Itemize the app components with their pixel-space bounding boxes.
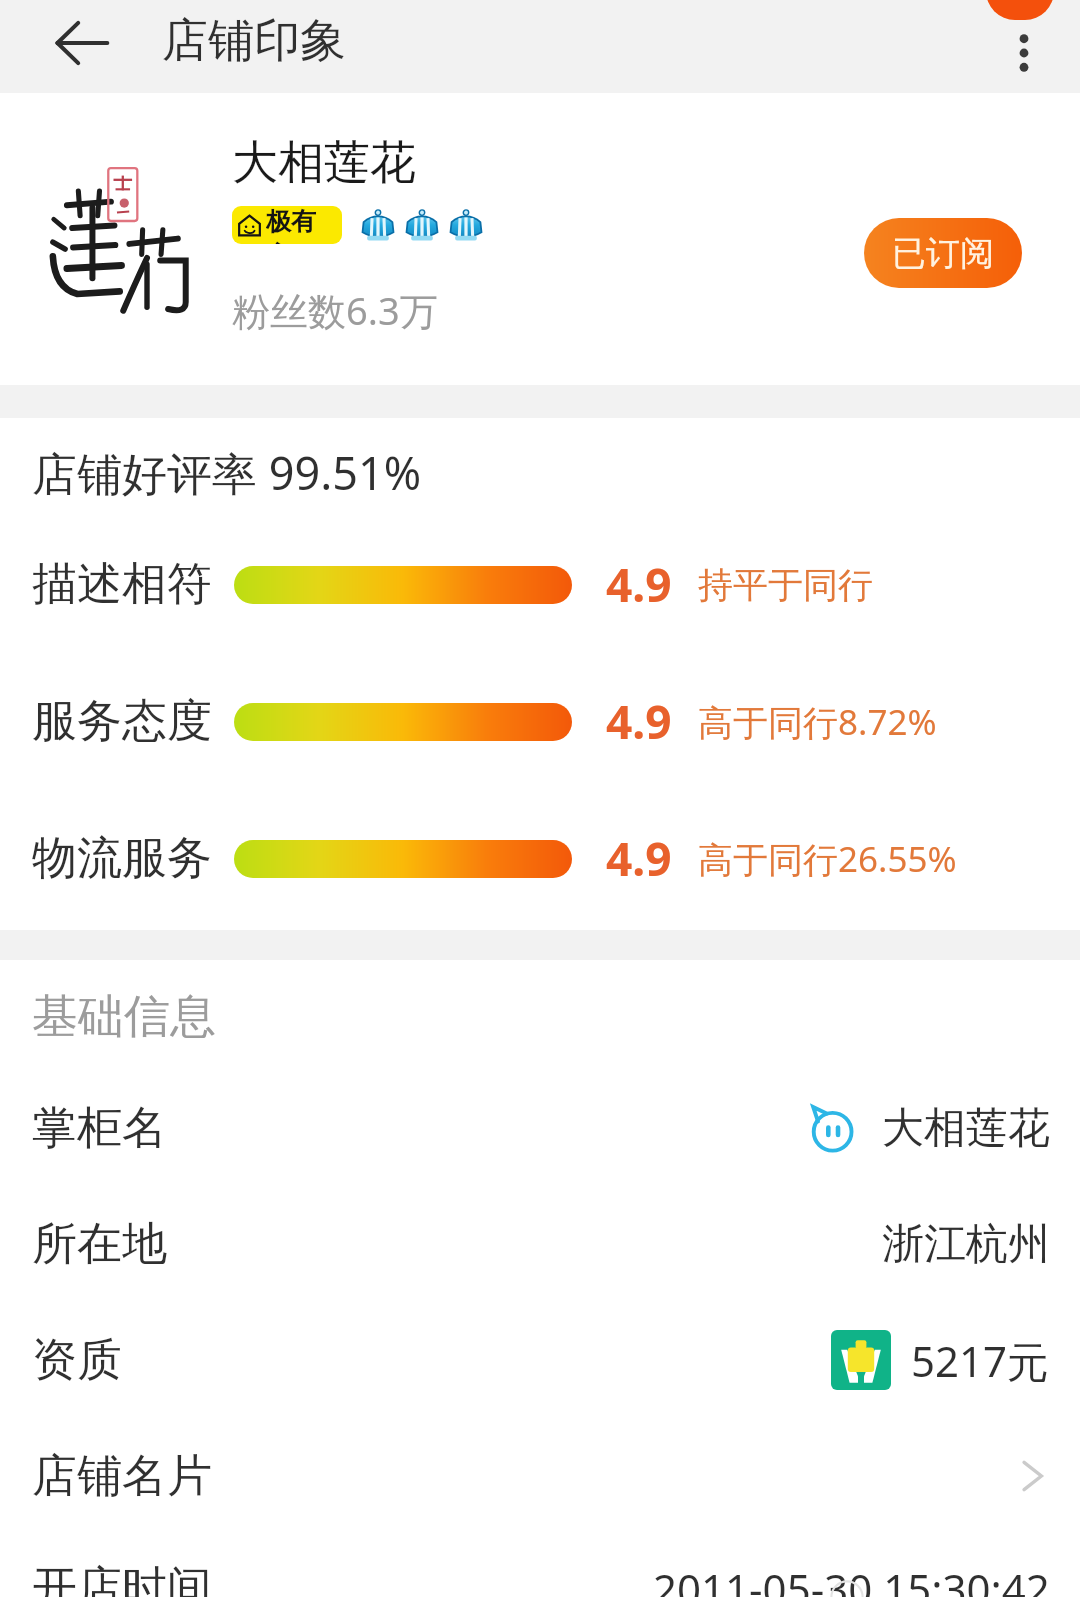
staticText: 店铺名片 <box>32 1448 212 1505</box>
button[interactable]: 已订阅 <box>864 218 1022 288</box>
button[interactable]: 物流服务 <box>32 827 1080 890</box>
staticText: 服务态度 <box>32 693 234 750</box>
staticText: 4.9 <box>606 827 672 890</box>
staticText: 2011-05-30 15:30:42 <box>653 1560 1050 1597</box>
button[interactable]: 店铺名片 <box>0 1444 1080 1508</box>
staticText: 开店时间 <box>32 1560 212 1597</box>
staticText: 高于同行26.55% <box>698 835 957 883</box>
button[interactable]: 大相莲花 <box>0 93 1080 385</box>
staticText: 物流服务 <box>32 830 234 887</box>
staticText: 高于同行8.72% <box>698 698 937 746</box>
staticText: 店铺印象 <box>162 12 346 70</box>
button[interactable]: 开店时间 <box>0 1560 1080 1597</box>
staticText: 极有家 <box>266 206 336 244</box>
staticText: 粉丝数6.3万 <box>232 284 438 336</box>
staticText: 4.9 <box>606 553 672 616</box>
staticText: 大相莲花 <box>882 1102 1050 1155</box>
staticText: 4.9 <box>606 690 672 753</box>
staticText: 资质 <box>32 1332 122 1389</box>
other: Open shop card <box>1014 1458 1050 1494</box>
staticText: 5217元 <box>911 1332 1050 1389</box>
button[interactable]: 掌柜名 <box>0 1096 1080 1160</box>
staticText: 大相莲花 <box>232 134 416 192</box>
button[interactable]: More options <box>980 9 1068 97</box>
button[interactable]: 所在地 <box>0 1212 1080 1276</box>
staticText: 浙江杭州 <box>882 1218 1050 1271</box>
button[interactable]: Back <box>34 0 128 89</box>
staticText: 店铺好评率 99.51% <box>32 442 422 503</box>
button[interactable]: 服务态度 <box>32 690 1080 753</box>
staticText: 已订阅 <box>892 232 994 275</box>
staticText: 基础信息 <box>32 988 216 1046</box>
staticText: 描述相符 <box>32 556 234 613</box>
button[interactable]: 资质 <box>0 1328 1080 1392</box>
staticText: 所在地 <box>32 1216 167 1273</box>
staticText: 持平于同行 <box>698 563 873 607</box>
button[interactable]: 描述相符 <box>32 553 1080 616</box>
staticText: 掌柜名 <box>32 1100 167 1157</box>
